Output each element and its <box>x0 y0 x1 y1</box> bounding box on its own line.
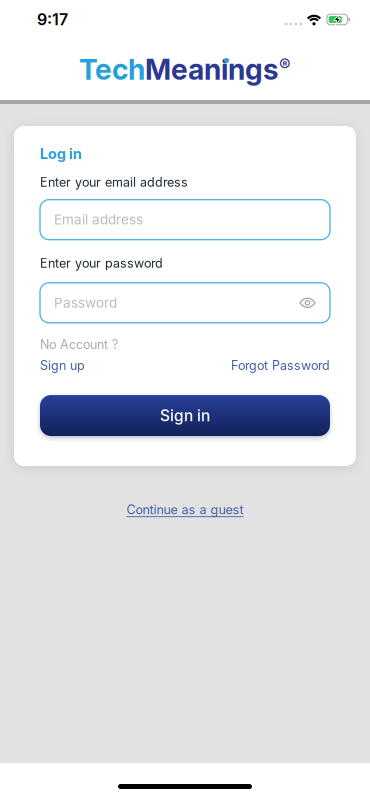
textField[interactable]: Email address <box>40 200 330 240</box>
staticText: Continue as a guest <box>126 502 243 517</box>
staticText: Sign in <box>160 406 210 425</box>
secureTextField[interactable]: Password <box>40 283 330 323</box>
staticText: No Account ? <box>40 337 118 352</box>
staticText: Enter your email address <box>40 174 188 190</box>
staticText: Password <box>54 295 117 311</box>
button[interactable]: Forgot Password <box>231 358 330 373</box>
staticText: Email address <box>54 211 143 228</box>
button[interactable]: Sign in <box>40 395 330 436</box>
staticText: ® <box>279 54 291 75</box>
staticText: 9:17 <box>37 10 68 29</box>
staticText: Log in <box>40 145 82 162</box>
staticText: Enter your password <box>40 256 163 271</box>
button[interactable]: Continue as a guest <box>126 502 243 517</box>
staticText: Meanings <box>145 52 279 87</box>
button[interactable]: Sign up <box>40 358 85 373</box>
staticText: Forgot Password <box>231 358 330 373</box>
staticText: Tech <box>79 52 145 87</box>
button[interactable]: Show password <box>299 297 316 308</box>
staticText: Sign up <box>40 358 85 373</box>
